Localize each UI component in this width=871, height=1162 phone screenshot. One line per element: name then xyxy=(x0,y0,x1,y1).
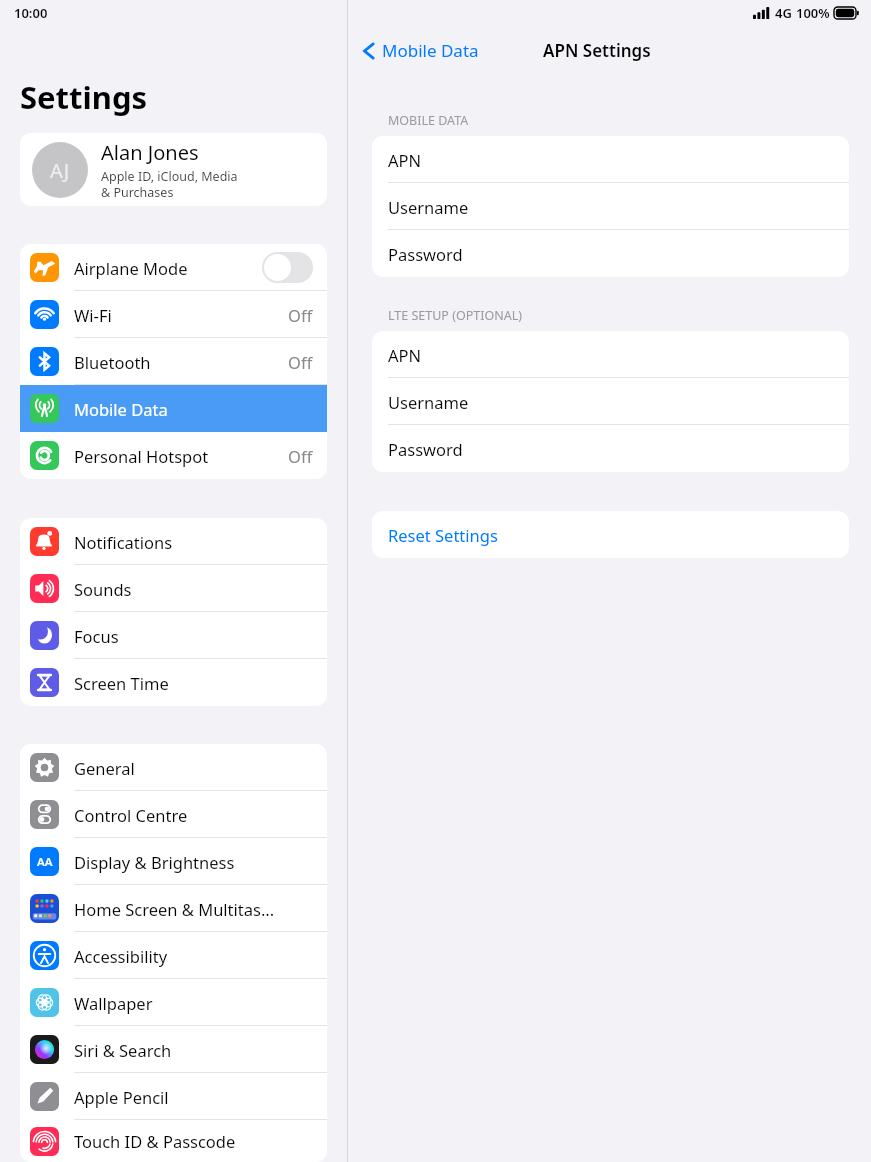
button[interactable]: APN xyxy=(372,331,849,378)
button[interactable]: Password xyxy=(372,230,849,277)
staticText: Notifications xyxy=(74,531,313,553)
staticText: Off xyxy=(288,351,313,373)
button[interactable]: Username xyxy=(372,378,849,425)
button[interactable]: AA xyxy=(20,838,327,885)
staticText: APN Settings xyxy=(543,39,651,62)
staticText: Off xyxy=(288,445,313,467)
button[interactable]: Airplane Mode xyxy=(20,244,327,291)
button[interactable]: APN xyxy=(372,136,849,183)
button[interactable]: Username xyxy=(372,183,849,230)
staticText: 100% xyxy=(796,4,830,22)
button[interactable]: Wi-Fi xyxy=(20,291,327,338)
staticText: Apple Pencil xyxy=(74,1086,313,1108)
button[interactable]: Home Screen & Multitas... xyxy=(20,885,327,932)
button[interactable]: Control Centre xyxy=(20,791,327,838)
button[interactable]: Sounds xyxy=(20,565,327,612)
staticText: General xyxy=(74,757,313,779)
staticText: Password xyxy=(388,438,463,460)
staticText: Personal Hotspot xyxy=(74,445,288,467)
button[interactable]: AJ xyxy=(20,133,327,206)
button[interactable]: Password xyxy=(372,425,849,472)
staticText: APN xyxy=(388,149,422,171)
button[interactable]: Notifications xyxy=(20,518,327,565)
staticText: Airplane Mode xyxy=(74,257,262,279)
button[interactable]: Screen Time xyxy=(20,659,327,706)
button[interactable]: Bluetooth xyxy=(20,338,327,385)
staticText: Screen Time xyxy=(74,672,313,694)
staticText: LTE SETUP (OPTIONAL) xyxy=(388,307,522,324)
staticText: Apple ID, iCloud, Media & Purchases xyxy=(101,168,238,200)
staticText: Siri & Search xyxy=(74,1039,313,1061)
staticText: Wallpaper xyxy=(74,992,313,1014)
staticText: Sounds xyxy=(74,578,313,600)
staticText: 10:00 xyxy=(14,4,48,22)
staticText: 4G xyxy=(775,4,792,22)
staticText: AA xyxy=(37,854,53,870)
staticText: Alan Jones xyxy=(101,139,199,166)
button[interactable]: Apple Pencil xyxy=(20,1073,327,1120)
staticText: Touch ID & Passcode xyxy=(74,1130,313,1152)
staticText: Settings xyxy=(20,76,148,118)
button[interactable]: Focus xyxy=(20,612,327,659)
staticText: Password xyxy=(388,243,463,265)
button[interactable]: Mobile Data xyxy=(362,39,479,62)
staticText: APN xyxy=(388,344,422,366)
button[interactable]: Airplane Mode toggle xyxy=(262,252,313,283)
staticText: Reset Settings xyxy=(388,524,498,546)
staticText: MOBILE DATA xyxy=(388,112,469,129)
staticText: AJ xyxy=(50,157,70,184)
staticText: Username xyxy=(388,391,469,413)
staticText: Mobile Data xyxy=(382,39,479,62)
staticText: Accessibility xyxy=(74,945,313,967)
staticText: Display & Brightness xyxy=(74,851,313,873)
button[interactable]: General xyxy=(20,744,327,791)
button[interactable]: Reset Settings xyxy=(372,511,849,558)
staticText: Wi-Fi xyxy=(74,304,288,326)
staticText: Mobile Data xyxy=(74,398,313,420)
button[interactable]: Wallpaper xyxy=(20,979,327,1026)
staticText: Focus xyxy=(74,625,313,647)
button[interactable]: Accessibility xyxy=(20,932,327,979)
staticText: Off xyxy=(288,304,313,326)
staticText: Home Screen & Multitas... xyxy=(74,898,313,920)
staticText: Username xyxy=(388,196,469,218)
staticText: Bluetooth xyxy=(74,351,288,373)
button[interactable]: Siri & Search xyxy=(20,1026,327,1073)
button[interactable]: Touch ID & Passcode xyxy=(20,1120,327,1162)
button[interactable]: Mobile Data xyxy=(20,385,327,432)
staticText: Control Centre xyxy=(74,804,313,826)
button[interactable]: Personal Hotspot xyxy=(20,432,327,479)
